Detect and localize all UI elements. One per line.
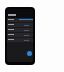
button[interactable] xyxy=(7,18,33,22)
button[interactable]: Add xyxy=(27,51,32,56)
button[interactable] xyxy=(7,38,33,42)
button[interactable] xyxy=(7,28,33,32)
button[interactable] xyxy=(7,33,33,37)
button[interactable] xyxy=(7,23,33,27)
